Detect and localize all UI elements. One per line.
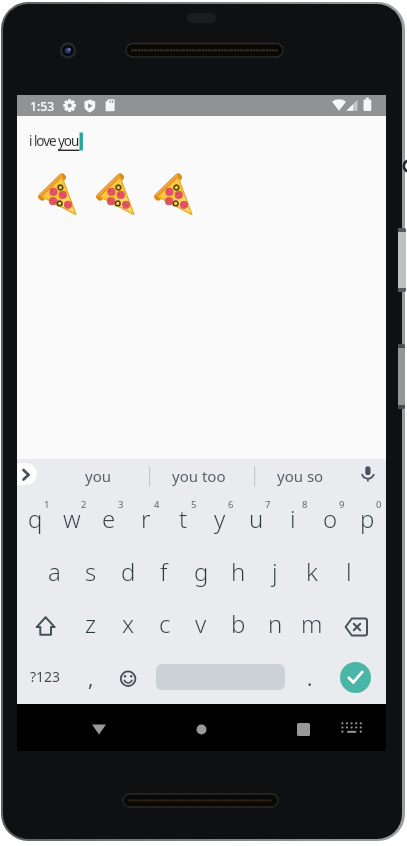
staticText: d [121,555,136,588]
staticText: q [28,502,43,535]
staticText: 2 [81,498,87,511]
staticText: x [122,607,135,640]
staticText: 0 [376,498,382,511]
staticText: p [360,502,375,535]
staticText: z [85,607,97,640]
staticText: l [346,555,352,588]
staticText: 3 [118,498,124,511]
staticText: 9 [339,498,345,511]
staticText: v [195,607,207,640]
staticText: 7 [265,498,271,511]
staticText: i love you [29,132,79,150]
staticText: y [214,502,226,535]
staticText: 4 [154,498,160,511]
staticText: , [88,665,94,692]
staticText: b [231,607,246,640]
staticText: n [268,607,283,640]
staticText: f [160,555,168,588]
staticText: you [85,466,111,486]
staticText: k [306,555,318,588]
staticText: a [48,555,61,588]
staticText: j [272,555,278,588]
staticText: m [301,607,323,640]
staticText: you too [172,466,226,486]
staticText: i [290,502,296,535]
staticText: c [159,607,171,640]
staticText: s [85,555,97,588]
staticText: 1:53 [30,98,55,115]
staticText: w [63,502,81,535]
staticText: g [194,555,209,588]
staticText: 8 [302,498,308,511]
staticText: o [323,502,338,535]
staticText: 1 [44,498,50,511]
staticText: . [307,665,313,692]
staticText: 5 [191,498,197,511]
staticText: ?123 [30,667,61,686]
staticText: r [141,502,151,535]
staticText: u [249,502,264,535]
staticText: e [102,502,116,535]
staticText: 6 [228,498,234,511]
staticText: t [179,502,188,535]
staticText: h [231,555,246,588]
staticText: you so [277,466,324,486]
